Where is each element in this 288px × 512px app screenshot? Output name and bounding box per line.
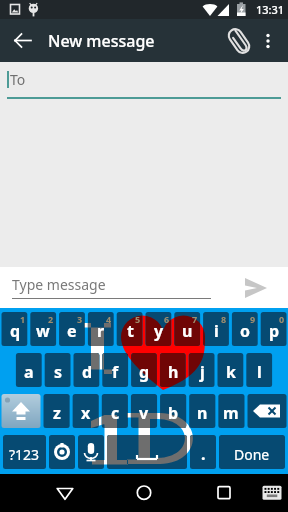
button[interactable]: To — [0, 62, 288, 100]
button[interactable]: d — [74, 353, 100, 387]
staticText: i — [214, 320, 219, 342]
button[interactable]: y — [146, 312, 172, 346]
button[interactable]: l — [246, 353, 272, 387]
staticText: d — [82, 361, 93, 383]
staticText: g — [139, 361, 150, 383]
staticText: 1 — [20, 313, 26, 325]
staticText: 4 — [106, 313, 112, 325]
staticText: 2 — [48, 313, 54, 325]
button[interactable]: Space — [107, 435, 187, 469]
button[interactable]: v — [131, 394, 157, 428]
staticText: y — [154, 320, 164, 342]
staticText: z — [53, 402, 61, 424]
staticText: j — [200, 361, 205, 383]
staticText: 3 — [77, 313, 83, 325]
staticText: f — [112, 361, 119, 383]
staticText: x — [81, 402, 91, 424]
button[interactable]: q — [2, 312, 28, 346]
staticText: 8 — [221, 313, 227, 325]
button[interactable]: i — [203, 312, 229, 346]
button[interactable]: Attach — [224, 26, 254, 56]
staticText: c — [111, 402, 120, 424]
button[interactable]: More options — [256, 29, 280, 53]
staticText: l — [257, 361, 262, 383]
staticText: e — [67, 320, 77, 342]
button[interactable]: Settings — [49, 435, 75, 469]
staticText: m — [223, 402, 239, 424]
staticText: 7 — [192, 313, 198, 325]
staticText: ?123 — [9, 445, 40, 464]
staticText: v — [139, 402, 149, 424]
button[interactable]: Shift — [2, 394, 41, 428]
button[interactable]: b — [160, 394, 186, 428]
button[interactable]: Send — [235, 268, 275, 308]
button[interactable]: Voice input — [78, 435, 104, 469]
button[interactable]: Recent apps — [184, 474, 254, 512]
staticText: q — [10, 320, 21, 342]
button[interactable]: m — [218, 394, 244, 428]
button[interactable]: Navigate up — [0, 19, 44, 62]
staticText: 5 — [135, 313, 141, 325]
staticText: r — [97, 320, 105, 342]
button[interactable]: k — [218, 353, 244, 387]
button[interactable]: j — [189, 353, 215, 387]
button[interactable]: r — [88, 312, 114, 346]
staticText: a — [24, 361, 34, 383]
button[interactable]: Back — [0, 474, 108, 512]
staticText: To — [10, 70, 26, 89]
button[interactable]: e — [59, 312, 85, 346]
staticText: p — [269, 320, 280, 342]
staticText: 6 — [164, 313, 170, 325]
button[interactable]: z — [44, 394, 70, 428]
button[interactable]: h — [160, 353, 186, 387]
button[interactable]: s — [45, 353, 71, 387]
staticText: b — [168, 402, 179, 424]
button[interactable]: x — [73, 394, 99, 428]
button[interactable]: g — [131, 353, 157, 387]
button[interactable]: o — [232, 312, 258, 346]
button[interactable]: c — [102, 394, 128, 428]
staticText: Done — [234, 445, 270, 464]
staticText: h — [168, 361, 179, 383]
button[interactable]: Done — [219, 435, 285, 469]
staticText: . — [201, 443, 206, 465]
button[interactable]: ?123 — [3, 435, 46, 469]
button[interactable]: f — [102, 353, 128, 387]
button[interactable]: n — [189, 394, 215, 428]
button[interactable]: . — [190, 435, 216, 469]
staticText: n — [197, 402, 208, 424]
staticText: u — [182, 320, 193, 342]
button[interactable]: p — [261, 312, 287, 346]
button[interactable]: Home — [108, 474, 184, 512]
staticText: s — [54, 361, 63, 383]
button[interactable]: w — [30, 312, 56, 346]
button[interactable]: a — [16, 353, 42, 387]
button[interactable]: t — [117, 312, 143, 346]
button[interactable]: u — [174, 312, 200, 346]
staticText: 0 — [279, 313, 285, 325]
staticText: New message — [48, 30, 155, 52]
staticText: Type message — [12, 275, 106, 294]
staticText: 9 — [250, 313, 256, 325]
button[interactable]: Switch keyboard — [254, 474, 288, 512]
button[interactable]: Backspace — [248, 394, 287, 428]
staticText: 13:31 — [256, 2, 285, 17]
staticText: k — [226, 361, 236, 383]
staticText: t — [127, 320, 134, 342]
staticText: o — [240, 320, 251, 342]
staticText: w — [36, 320, 50, 342]
